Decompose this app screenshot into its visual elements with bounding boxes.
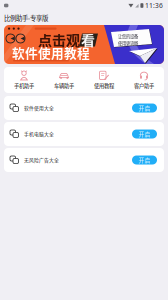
- button[interactable]: 使用教程: [84, 67, 124, 93]
- staticText: 车辆助手: [54, 82, 74, 90]
- staticText: 软件使用大全: [24, 104, 54, 111]
- button[interactable]: 客户助手: [124, 67, 164, 93]
- staticText: 使用教程: [94, 82, 114, 90]
- button[interactable]: 点击观: [4, 25, 164, 64]
- staticText: 开启: [138, 156, 150, 164]
- staticText: 无风险广告大全: [24, 156, 59, 163]
- staticText: 点击观: [38, 29, 80, 50]
- staticText: 比例助手-专享版: [4, 13, 48, 23]
- staticText: 手机助手: [14, 82, 34, 90]
- staticText: 开启: [138, 104, 150, 112]
- button[interactable]: 无风险广告大全: [4, 148, 164, 172]
- staticText: 看: [81, 29, 95, 50]
- staticText: 让您的设备: [118, 33, 138, 39]
- button[interactable]: 手机电脑大全: [4, 122, 164, 146]
- button[interactable]: 手机助手: [4, 67, 44, 93]
- button[interactable]: 车辆助手: [44, 67, 84, 93]
- staticText: 客户助手: [134, 82, 154, 90]
- staticText: 软件使用教程: [12, 43, 90, 62]
- staticText: 11:36: [145, 1, 163, 10]
- staticText: 使用更流畅: [118, 40, 138, 46]
- button[interactable]: 软件使用大全: [4, 96, 164, 120]
- staticText: 手机电脑大全: [24, 130, 54, 137]
- staticText: 开启: [138, 130, 150, 138]
